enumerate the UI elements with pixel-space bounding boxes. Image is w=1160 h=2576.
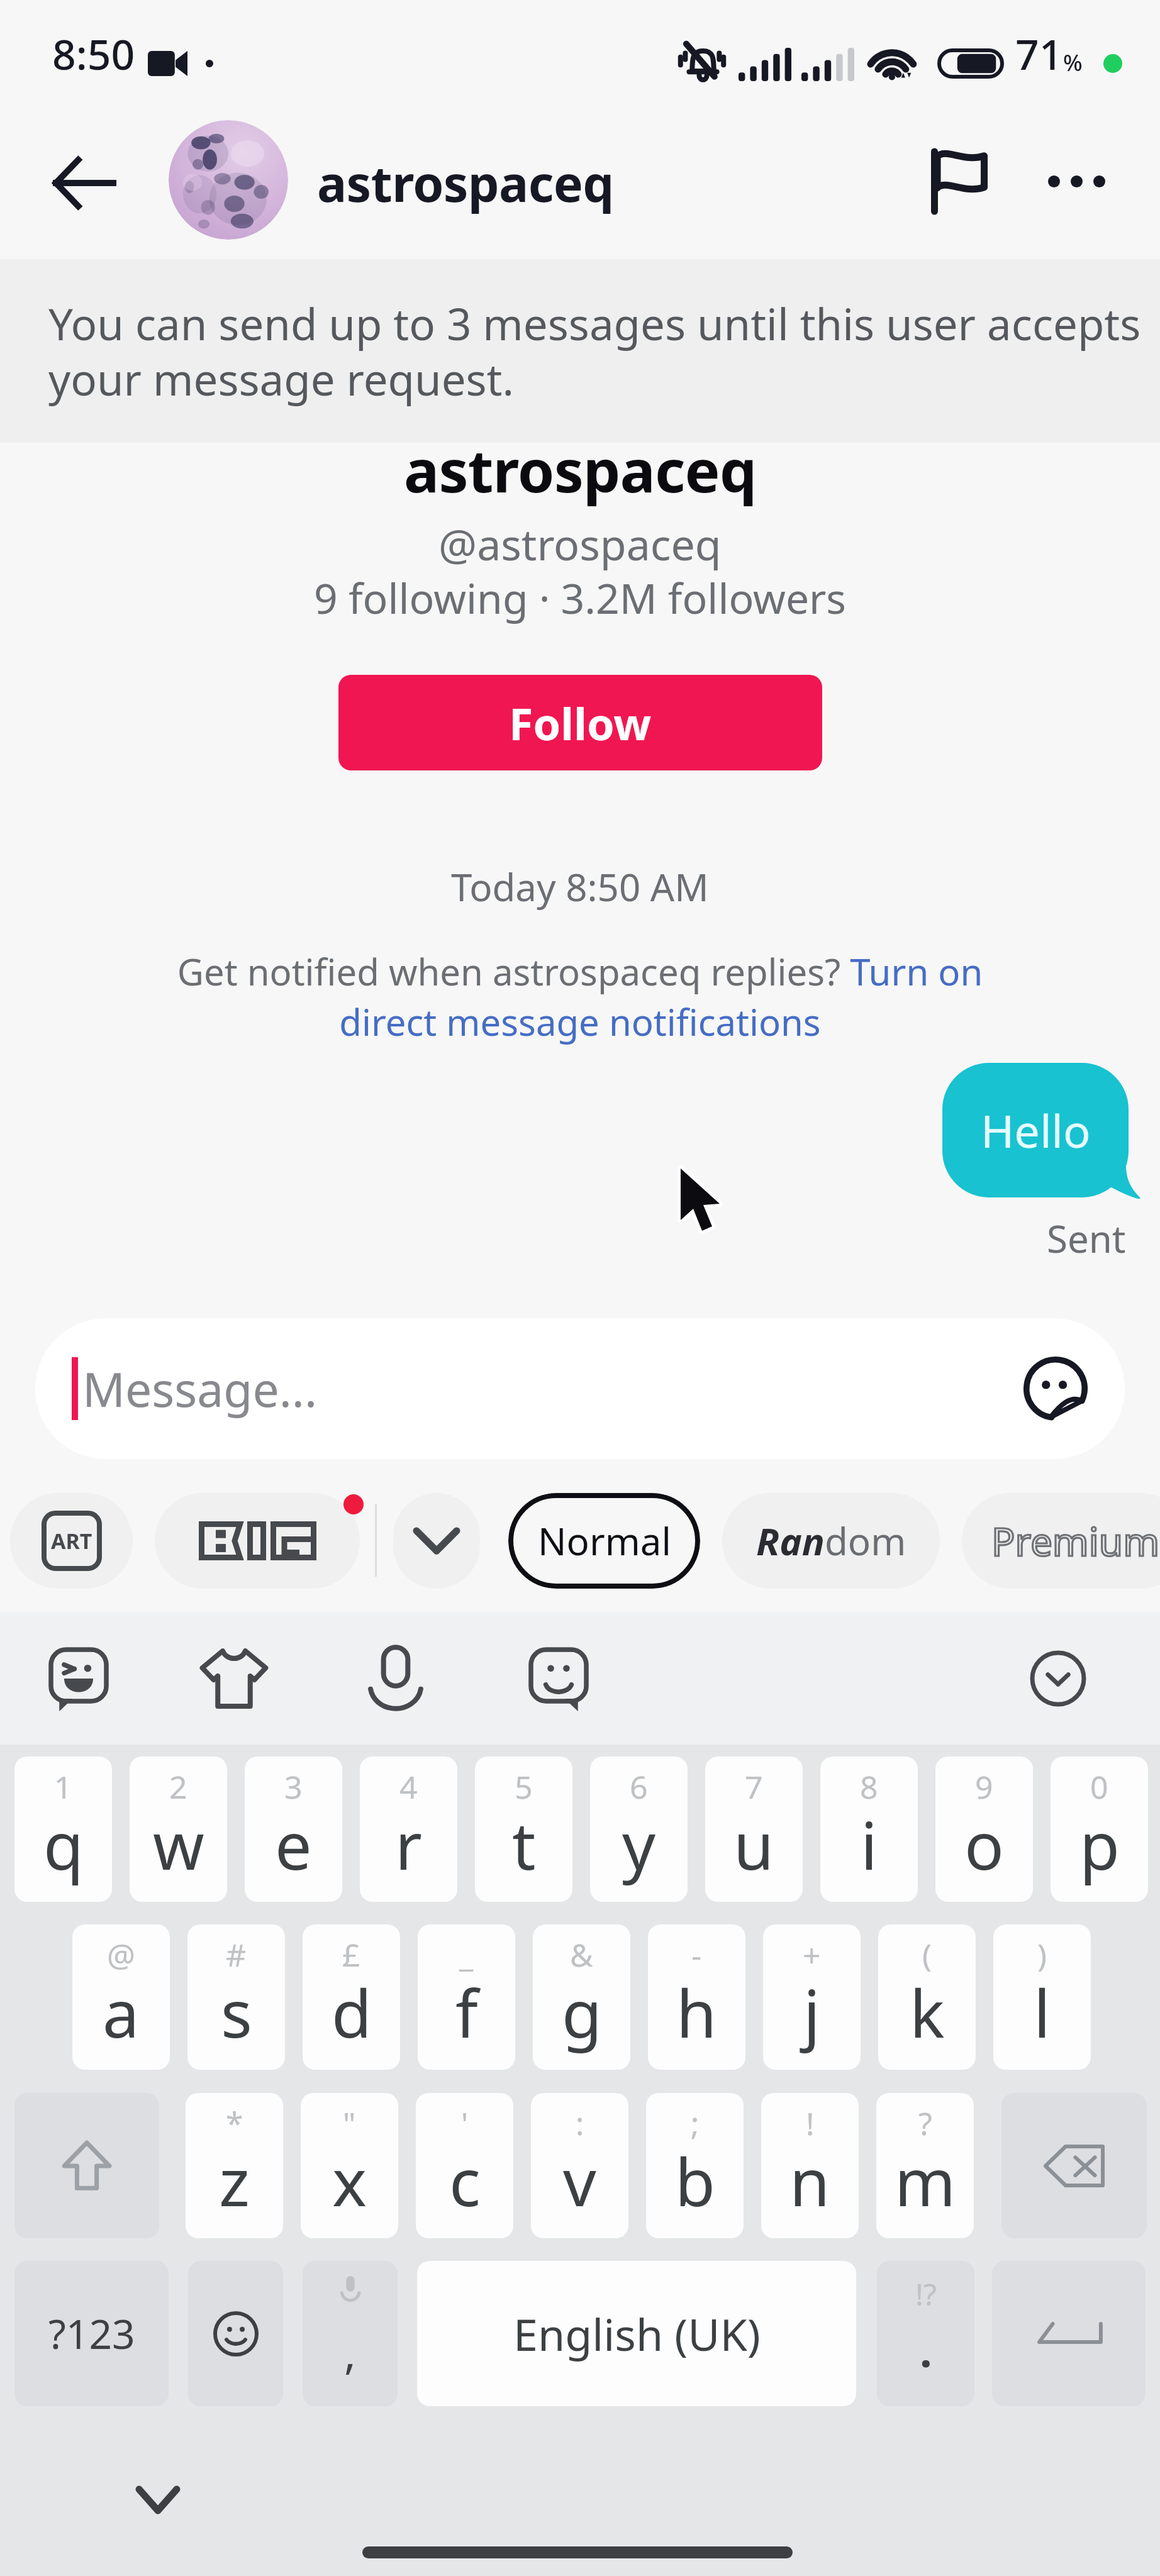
staticText: !? xyxy=(915,2273,937,2314)
staticText: + xyxy=(803,1933,821,1976)
button[interactable]: Voice message xyxy=(352,1635,440,1723)
staticText: 71 xyxy=(1015,25,1063,82)
button[interactable]: , xyxy=(303,2261,398,2406)
staticText: r xyxy=(395,1800,422,1889)
staticText: Today 8:50 AM xyxy=(451,861,709,913)
staticText: You can send up to 3 messages until this… xyxy=(48,294,1156,408)
button[interactable]: Message... xyxy=(35,1318,1125,1459)
button[interactable]: # xyxy=(187,1924,285,2070)
button[interactable]: Enter xyxy=(992,2261,1146,2406)
staticText: Premium xyxy=(991,1514,1160,1567)
button[interactable]: Premium xyxy=(962,1493,1160,1589)
staticText: d xyxy=(332,1968,372,2057)
button[interactable]: 8 xyxy=(820,1757,918,1902)
staticText: astrospaceq xyxy=(317,149,614,217)
staticText: t xyxy=(512,1800,536,1889)
button[interactable]: ' xyxy=(416,2093,513,2238)
button[interactable]: * xyxy=(186,2093,283,2238)
button[interactable]: English (UK) xyxy=(417,2261,856,2406)
staticText: z xyxy=(219,2136,250,2226)
button[interactable]: ? xyxy=(876,2093,974,2238)
button[interactable]: Stickers xyxy=(515,1635,603,1723)
button[interactable]: 1 xyxy=(14,1757,112,1902)
button[interactable]: ?123 xyxy=(14,2261,169,2406)
button[interactable]: 4 xyxy=(360,1757,457,1902)
button[interactable]: Shop xyxy=(190,1635,278,1723)
button[interactable]: & xyxy=(533,1924,630,2070)
button[interactable]: 2 xyxy=(130,1757,227,1902)
staticText: s xyxy=(221,1968,252,2057)
button[interactable]: Backspace xyxy=(1001,2093,1147,2238)
button[interactable]: + xyxy=(763,1924,861,2070)
staticText: c xyxy=(449,2136,481,2226)
staticText: m xyxy=(895,2136,956,2226)
staticText: & xyxy=(570,1933,593,1976)
staticText: £ xyxy=(342,1933,360,1976)
staticText: k xyxy=(910,1968,945,2057)
button[interactable]: Collapse keyboard xyxy=(1014,1635,1102,1723)
staticText: 8:50 xyxy=(52,25,135,82)
button[interactable]: 3 xyxy=(245,1757,342,1902)
staticText: - xyxy=(691,1933,702,1976)
staticText: , xyxy=(344,2322,356,2382)
staticText: ) xyxy=(1037,1933,1047,1976)
staticText: astrospaceq xyxy=(404,430,757,510)
button[interactable]: ! xyxy=(761,2093,859,2238)
button[interactable]: ) xyxy=(993,1924,1091,2070)
staticText: n xyxy=(789,2136,830,2226)
staticText: 9 xyxy=(975,1765,993,1808)
staticText: @ xyxy=(107,1933,135,1976)
button[interactable]: ; xyxy=(646,2093,744,2238)
button[interactable]: Report xyxy=(908,131,1009,231)
staticText: 5 xyxy=(515,1765,533,1808)
staticText: 6 xyxy=(630,1765,648,1808)
staticText: ART xyxy=(51,1526,92,1555)
button[interactable]: _ xyxy=(418,1924,515,2070)
button[interactable]: Hide keyboard xyxy=(120,2468,196,2531)
button[interactable]: Emoji xyxy=(35,1635,123,1723)
staticText: x xyxy=(332,2136,367,2226)
staticText: ; xyxy=(691,2102,700,2145)
button[interactable]: 9 xyxy=(935,1757,1033,1902)
button[interactable]: 0 xyxy=(1051,1757,1148,1902)
staticText: * xyxy=(226,2102,243,2145)
button[interactable]: 6 xyxy=(590,1757,688,1902)
button[interactable]: Shift xyxy=(14,2093,159,2238)
staticText: v xyxy=(563,2136,596,2226)
button[interactable]: Random xyxy=(722,1493,940,1589)
staticText: Normal xyxy=(538,1515,671,1567)
button[interactable]: ( xyxy=(878,1924,976,2070)
staticText: . xyxy=(920,2320,932,2380)
button[interactable]: £ xyxy=(303,1924,400,2070)
button[interactable]: !? xyxy=(877,2261,974,2406)
staticText: i xyxy=(861,1800,878,1889)
staticText: 1 xyxy=(54,1765,72,1808)
button[interactable]: - xyxy=(648,1924,745,2070)
button[interactable]: 5 xyxy=(475,1757,572,1902)
staticText: g xyxy=(562,1968,602,2057)
button[interactable]: Emoji keyboard xyxy=(188,2261,283,2406)
staticText: ( xyxy=(922,1933,932,1976)
button[interactable]: Big text xyxy=(155,1493,360,1589)
staticText: 3 xyxy=(284,1765,303,1808)
button[interactable]: Normal xyxy=(508,1493,700,1589)
staticText: English (UK) xyxy=(513,2304,761,2363)
button[interactable]: Art text xyxy=(10,1493,133,1589)
staticText: Sent xyxy=(1047,1213,1126,1264)
staticText: _ xyxy=(459,1933,474,1976)
button[interactable]: : xyxy=(531,2093,628,2238)
button[interactable]: Expand styles xyxy=(393,1493,480,1589)
staticText: " xyxy=(343,2102,356,2145)
button[interactable]: @ xyxy=(72,1924,170,2070)
button[interactable]: Follow xyxy=(338,675,822,770)
staticText: b xyxy=(675,2136,715,2226)
button[interactable]: " xyxy=(301,2093,398,2238)
button[interactable]: Back xyxy=(33,134,133,232)
button[interactable]: More options xyxy=(1026,131,1127,231)
staticText: 2 xyxy=(169,1765,187,1808)
staticText: Random xyxy=(756,1515,906,1567)
button[interactable]: 7 xyxy=(705,1757,803,1902)
staticText: @astrospaceq xyxy=(438,514,722,573)
staticText: ? xyxy=(918,2102,932,2145)
button[interactable]: Stickers xyxy=(1020,1353,1091,1424)
